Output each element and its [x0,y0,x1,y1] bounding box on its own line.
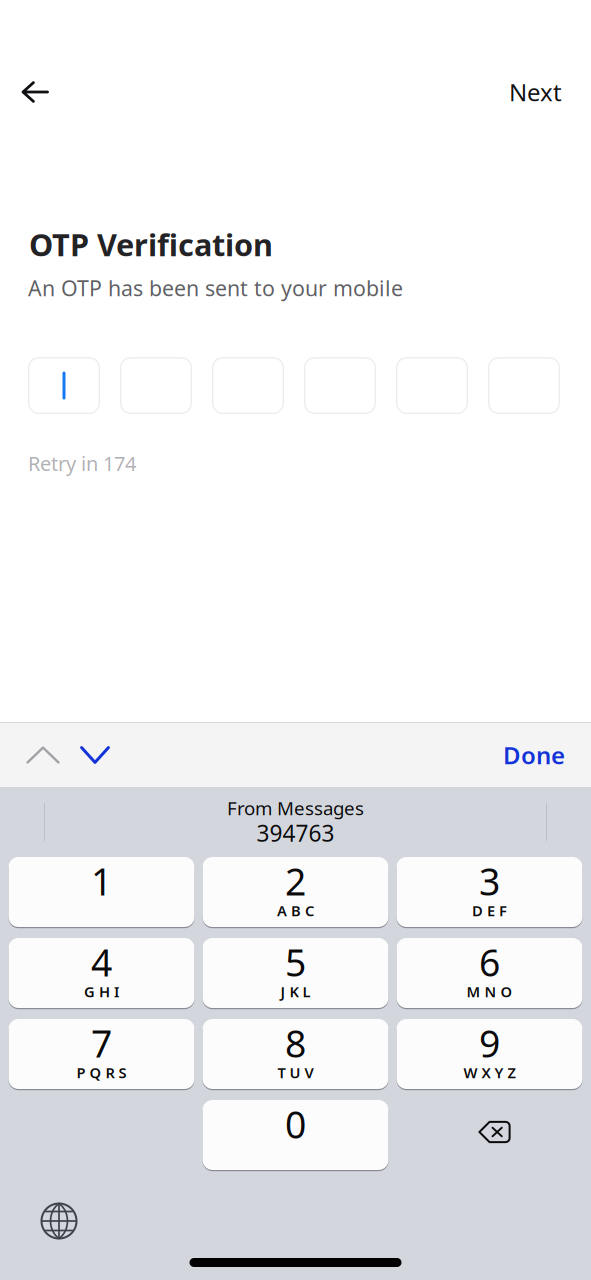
button[interactable]: Previous field [17,723,69,787]
button[interactable]: OTP digit [28,357,100,414]
button[interactable]: 8 [202,1019,388,1089]
button[interactable]: Next keyboard [29,1193,89,1249]
button[interactable]: 3 [396,857,582,927]
button[interactable]: 4 [8,938,194,1008]
button[interactable]: 9 [396,1019,582,1089]
staticText: Next [509,76,562,108]
staticText: 0 [285,1099,306,1149]
staticText: 2 [285,856,306,906]
staticText: 5 [285,937,306,987]
button[interactable]: 7 [8,1019,194,1089]
button[interactable]: Delete [396,1100,582,1170]
button[interactable]: OTP digit [212,357,284,414]
button[interactable]: OTP digit [304,357,376,414]
button[interactable]: Next field [69,723,121,787]
staticText: Retry in 174 [28,450,136,477]
staticText: From Messages [227,796,364,820]
staticText: OTP Verification [29,224,273,265]
staticText: Done [503,739,565,771]
staticText: G H I [84,982,119,1001]
staticText: 6 [479,937,500,987]
staticText: 4 [91,937,112,987]
button[interactable]: 0 [202,1100,388,1170]
button[interactable]: OTP digit [488,357,560,414]
button[interactable]: Done [503,723,565,787]
staticText: A B C [277,901,314,920]
staticText: M N O [466,982,512,1001]
button[interactable]: OTP digit [396,357,468,414]
button[interactable]: From Messages [135,786,455,857]
button[interactable]: Next [509,70,562,114]
button[interactable]: Back [21,70,69,114]
button[interactable]: 1 [8,857,194,927]
button[interactable]: OTP digit [120,357,192,414]
staticText: 1 [91,856,112,906]
button[interactable]: 5 [202,938,388,1008]
staticText: An OTP has been sent to your mobile [28,274,403,302]
staticText: 8 [285,1018,306,1068]
button[interactable]: 2 [202,857,388,927]
button[interactable]: 6 [396,938,582,1008]
staticText: W X Y Z [463,1063,515,1082]
staticText: 3 [479,856,500,906]
staticText: T U V [277,1063,313,1082]
staticText: D E F [472,901,507,920]
staticText: 7 [91,1018,112,1068]
staticText: P Q R S [76,1063,126,1082]
staticText: 9 [479,1018,500,1068]
staticText: 394763 [256,818,334,848]
staticText: J K L [280,982,310,1001]
